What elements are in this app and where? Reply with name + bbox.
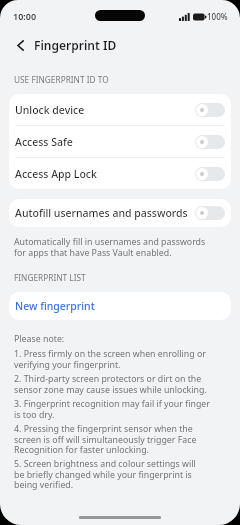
button[interactable]	[195, 167, 225, 181]
staticText: Please note:	[14, 333, 65, 345]
staticText: 1. Press firmly on the screen when enrol…	[14, 348, 206, 370]
button[interactable]	[11, 36, 29, 54]
staticText: Fingerprint ID	[34, 37, 117, 53]
staticText: 4. Pressing the fingerprint sensor when …	[14, 423, 197, 455]
button[interactable]: Access App Lock	[9, 158, 231, 189]
staticText: 10:00	[13, 10, 37, 22]
button[interactable]: Unlock device	[9, 94, 231, 125]
button[interactable]	[195, 103, 225, 117]
button[interactable]	[195, 135, 225, 149]
button[interactable]	[195, 206, 225, 220]
button[interactable]: New fingerprint	[9, 292, 231, 320]
staticText: Automatically fill in usernames and pass…	[14, 236, 206, 258]
staticText: 2. Third-party screen protectors or dirt…	[14, 373, 207, 395]
button[interactable]: Access Safe	[9, 126, 231, 157]
staticText: 3. Fingerprint recognition may fail if y…	[14, 398, 210, 420]
staticText: New fingerprint	[15, 299, 95, 313]
staticText: FINGERPRINT LIST	[14, 272, 86, 283]
staticText: USE FINGERPRINT ID TO	[14, 74, 109, 85]
button[interactable]: Autofill usernames and passwords	[9, 199, 231, 227]
staticText: Access Safe	[15, 135, 73, 149]
staticText: Access App Lock	[15, 167, 97, 181]
staticText: 100%	[207, 11, 228, 22]
staticText: 5. Screen brightness and colour settings…	[14, 458, 196, 490]
staticText: Unlock device	[15, 103, 85, 117]
staticText: Autofill usernames and passwords	[15, 206, 188, 220]
